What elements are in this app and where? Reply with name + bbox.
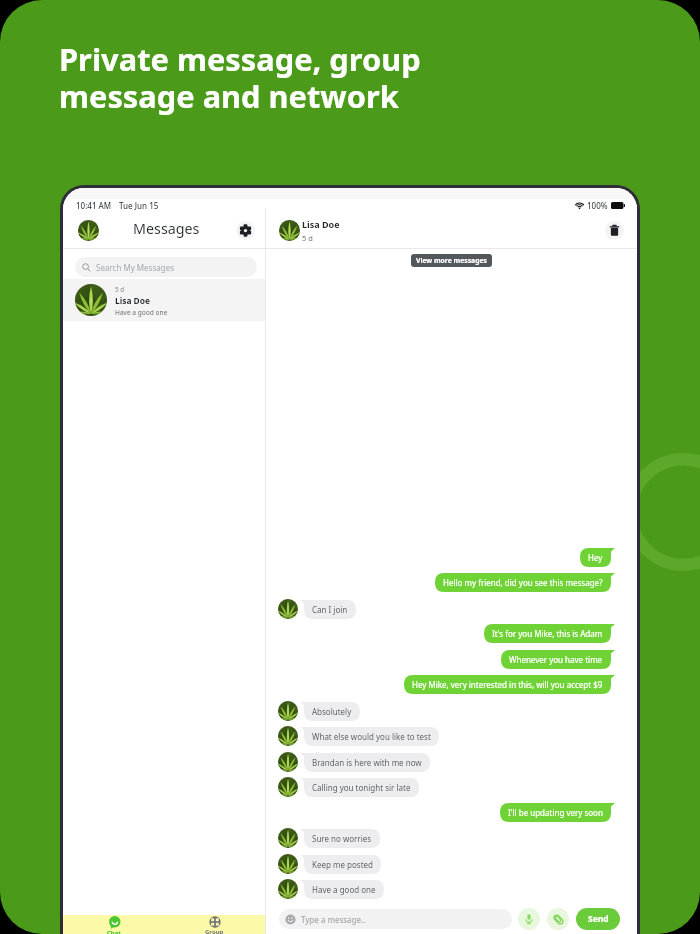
button[interactable]: Hey bbox=[580, 548, 615, 567]
button[interactable]: Type a message.. bbox=[279, 909, 512, 929]
staticText: It's for you Mike, this is Adam bbox=[492, 628, 603, 639]
staticText: View more messages bbox=[416, 256, 487, 265]
button[interactable]: Sure no worries bbox=[300, 829, 380, 848]
staticText: Can I join bbox=[312, 604, 348, 615]
button[interactable]: 5 d bbox=[63, 279, 265, 321]
staticText: Messages bbox=[133, 219, 200, 238]
staticText: I'll be updating very soon bbox=[508, 807, 603, 818]
staticText: Have a good one bbox=[115, 308, 168, 317]
button[interactable]: Have a good one bbox=[300, 880, 384, 899]
button[interactable]: Groups bbox=[164, 915, 265, 934]
button[interactable]: Can I join bbox=[300, 600, 356, 619]
button[interactable]: View more messages bbox=[411, 254, 492, 267]
button[interactable]: Attach file bbox=[547, 908, 569, 930]
staticText: Keep me posted bbox=[312, 859, 373, 870]
staticText: Group bbox=[205, 928, 224, 934]
button[interactable]: Search My Messages bbox=[75, 257, 257, 277]
staticText: Chat bbox=[107, 929, 121, 934]
staticText: Search My Messages bbox=[96, 262, 174, 273]
button[interactable]: Brandan is here with me now bbox=[300, 753, 430, 772]
staticText: Tue Jun 15 bbox=[119, 200, 159, 211]
button[interactable]: Whenever you have time bbox=[501, 650, 615, 669]
staticText: Absolutely bbox=[312, 706, 352, 717]
button[interactable]: It's for you Mike, this is Adam bbox=[484, 624, 615, 643]
button[interactable]: Settings bbox=[236, 221, 255, 240]
button[interactable]: Chats bbox=[63, 915, 164, 934]
staticText: Type a message.. bbox=[301, 914, 366, 925]
staticText: 5 d bbox=[302, 233, 313, 243]
staticText: Calling you tonight sir late bbox=[312, 782, 411, 793]
staticText: Whenever you have time bbox=[509, 654, 603, 665]
staticText: What else would you like to test bbox=[312, 731, 431, 742]
button[interactable]: Calling you tonight sir late bbox=[300, 778, 419, 797]
button[interactable]: Voice message bbox=[518, 908, 540, 930]
staticText: Send bbox=[588, 913, 609, 925]
staticText: Lisa Doe bbox=[115, 295, 151, 306]
button[interactable]: Delete conversation bbox=[605, 221, 624, 240]
button[interactable]: What else would you like to test bbox=[300, 727, 439, 746]
button[interactable]: Absolutely bbox=[300, 702, 360, 721]
staticText: Brandan is here with me now bbox=[312, 757, 422, 768]
staticText: 5 d bbox=[115, 285, 124, 293]
button[interactable]: Hello my friend, did you see this messag… bbox=[435, 573, 615, 592]
button[interactable]: Keep me posted bbox=[300, 855, 381, 874]
button[interactable]: Send bbox=[576, 908, 620, 930]
staticText: Hey bbox=[588, 552, 603, 563]
staticText: Hey Mike, very interested in this, will … bbox=[412, 679, 603, 690]
staticText: 100% bbox=[587, 200, 608, 211]
staticText: Hello my friend, did you see this messag… bbox=[443, 577, 603, 588]
button[interactable]: I'll be updating very soon bbox=[500, 803, 615, 822]
button[interactable]: Hey Mike, very interested in this, will … bbox=[404, 675, 615, 694]
staticText: 10:41 AM bbox=[76, 200, 112, 211]
staticText: Lisa Doe bbox=[302, 218, 340, 230]
staticText: Have a good one bbox=[312, 884, 376, 895]
staticText: Private message, group message and netwo… bbox=[59, 38, 421, 117]
staticText: Sure no worries bbox=[312, 833, 372, 844]
